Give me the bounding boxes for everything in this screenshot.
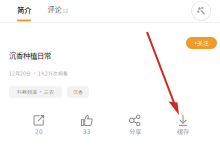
staticText: 沉香 bbox=[73, 88, 83, 95]
button[interactable]: 沉香 bbox=[67, 86, 89, 98]
button[interactable]: 分享 bbox=[111, 112, 159, 138]
staticText: 科教频道 · 三农 bbox=[17, 88, 54, 95]
staticText: 33 bbox=[83, 127, 91, 136]
staticText: 12 bbox=[62, 7, 68, 14]
button[interactable]: 20 bbox=[15, 112, 63, 138]
staticText: 20 bbox=[35, 127, 43, 136]
staticText: 分享 bbox=[129, 127, 141, 136]
button[interactable]: 33 bbox=[63, 112, 111, 138]
staticText: 12月20日 · 14.2万次观看 bbox=[9, 70, 68, 77]
staticText: 简介 bbox=[17, 4, 31, 15]
button[interactable]: +关注 bbox=[186, 37, 217, 49]
button[interactable]: 简介 bbox=[9, 3, 39, 22]
button[interactable]: 评论 bbox=[45, 3, 71, 15]
button[interactable]: 缓存 bbox=[159, 112, 207, 138]
button[interactable]: Options bbox=[191, 1, 211, 21]
staticText: 缓存 bbox=[177, 127, 189, 136]
staticText: +关注 bbox=[194, 39, 209, 47]
staticText: 评论 bbox=[47, 4, 61, 14]
button[interactable]: 科教频道 · 三农 bbox=[9, 86, 62, 98]
staticText: 沉香种植日常 bbox=[9, 50, 51, 61]
